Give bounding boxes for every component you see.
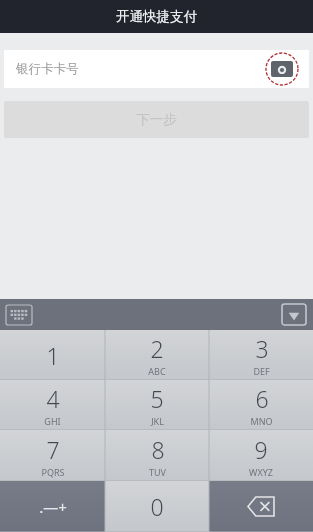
- staticText: GHI: [44, 415, 61, 427]
- button[interactable]: 8: [105, 430, 209, 481]
- staticText: JKL: [151, 415, 164, 427]
- staticText: ABC: [148, 365, 166, 377]
- button[interactable]: 6: [209, 380, 313, 430]
- staticText: 5: [150, 383, 164, 414]
- button[interactable]: 5: [105, 380, 209, 430]
- staticText: 7: [46, 434, 60, 465]
- button[interactable]: 删除: [209, 481, 313, 532]
- staticText: 下一步: [136, 111, 177, 128]
- staticText: 6: [255, 383, 269, 414]
- button[interactable]: 7: [0, 430, 105, 481]
- button[interactable]: 2: [105, 330, 209, 380]
- staticText: WXYZ: [249, 466, 273, 478]
- staticText: 9: [254, 434, 268, 465]
- staticText: DEF: [253, 365, 270, 377]
- button[interactable]: 银行卡卡号: [4, 50, 309, 88]
- staticText: 开通快捷支付: [116, 8, 197, 25]
- staticText: 1: [46, 340, 60, 371]
- staticText: 银行卡卡号: [16, 61, 79, 77]
- staticText: 0: [150, 491, 164, 522]
- button[interactable]: 3: [209, 330, 313, 380]
- button[interactable]: 4: [0, 380, 105, 430]
- button[interactable]: 扫描银行卡: [265, 52, 299, 86]
- staticText: 8: [151, 434, 165, 465]
- button[interactable]: 0: [105, 481, 209, 532]
- staticText: 3: [255, 333, 269, 364]
- button[interactable]: .—+: [0, 481, 105, 532]
- staticText: MNO: [250, 415, 273, 427]
- button[interactable]: 收起键盘: [282, 304, 306, 325]
- staticText: 2: [150, 333, 164, 364]
- button[interactable]: 9: [209, 430, 313, 481]
- staticText: PQRS: [41, 466, 65, 478]
- staticText: .—+: [39, 497, 67, 517]
- staticText: TUV: [149, 466, 166, 478]
- button[interactable]: 切换键盘: [6, 305, 32, 325]
- button[interactable]: 1: [0, 330, 105, 380]
- staticText: 4: [46, 383, 60, 414]
